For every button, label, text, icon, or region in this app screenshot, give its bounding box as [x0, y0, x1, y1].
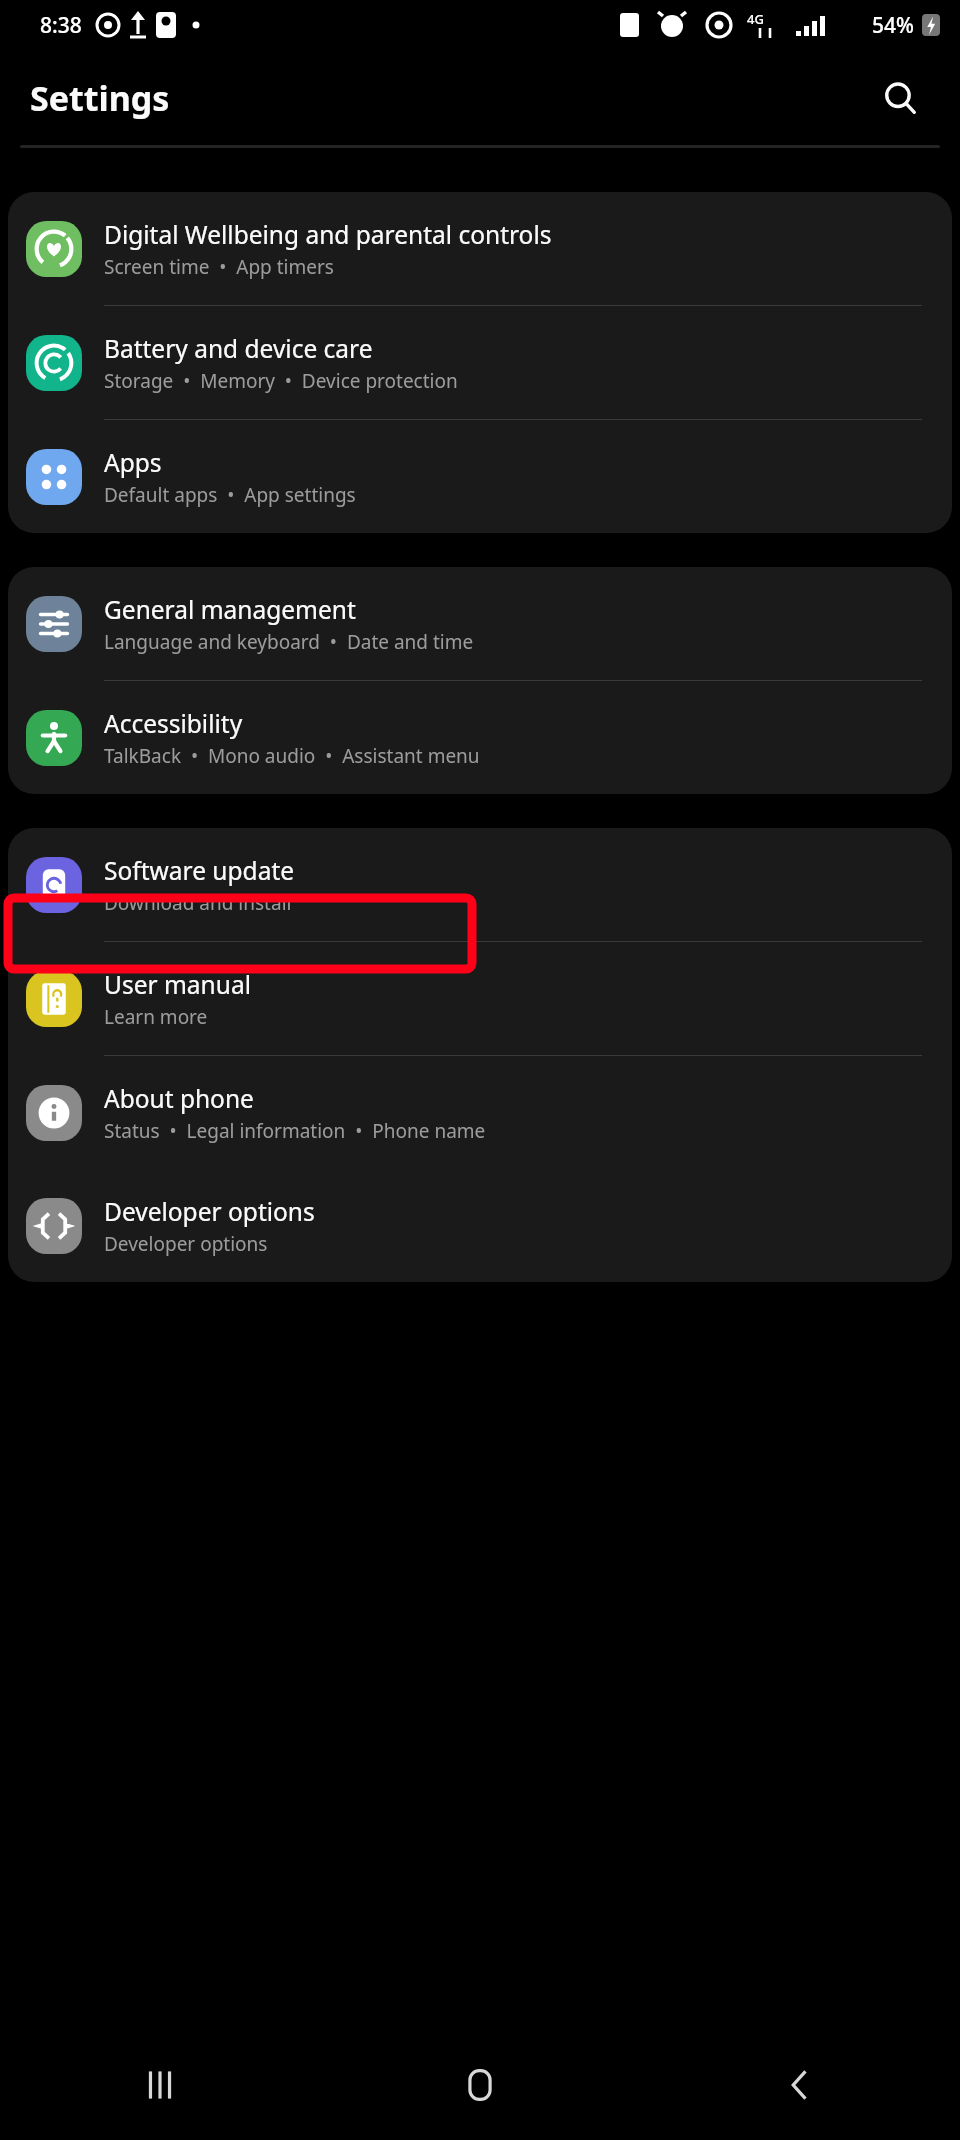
staticText: Status • Legal information • Phone name — [104, 1118, 486, 1144]
staticText: Download and install — [104, 890, 292, 916]
staticText: 8:38 — [40, 11, 82, 40]
staticText: Battery and device care — [104, 332, 373, 365]
button[interactable]: Home — [320, 2030, 640, 2140]
staticText: Apps — [104, 446, 162, 479]
staticText: 54% — [872, 11, 914, 40]
staticText: Settings — [30, 75, 170, 121]
button[interactable]: About phone — [8, 1056, 952, 1169]
staticText: User manual — [104, 968, 251, 1001]
staticText: Developer options — [104, 1231, 268, 1257]
staticText: Learn more — [104, 1004, 208, 1030]
staticText: TalkBack • Mono audio • Assistant menu — [104, 743, 480, 769]
button[interactable]: General management — [8, 567, 952, 680]
button[interactable]: Battery and device care — [8, 306, 952, 419]
staticText: General management — [104, 593, 356, 626]
button[interactable]: Search — [870, 68, 930, 128]
staticText: Storage • Memory • Device protection — [104, 368, 458, 394]
button[interactable]: User manual — [8, 942, 952, 1055]
button[interactable]: Back — [640, 2030, 960, 2140]
staticText: Digital Wellbeing and parental controls — [104, 218, 552, 251]
button[interactable]: Recents — [0, 2030, 320, 2140]
staticText: Language and keyboard • Date and time — [104, 629, 474, 655]
staticText: About phone — [104, 1082, 254, 1115]
button[interactable]: Apps — [8, 420, 952, 533]
button[interactable]: Software update — [8, 828, 952, 941]
staticText: Software update — [104, 854, 295, 887]
button[interactable]: Developer options — [8, 1169, 952, 1282]
staticText: Default apps • App settings — [104, 482, 356, 508]
staticText: Screen time • App timers — [104, 254, 334, 280]
button[interactable]: Accessibility — [8, 681, 952, 794]
button[interactable]: Digital Wellbeing and parental controls — [8, 192, 952, 305]
staticText: Accessibility — [104, 707, 243, 740]
staticText: 4G — [747, 10, 764, 28]
staticText: Developer options — [104, 1195, 315, 1228]
